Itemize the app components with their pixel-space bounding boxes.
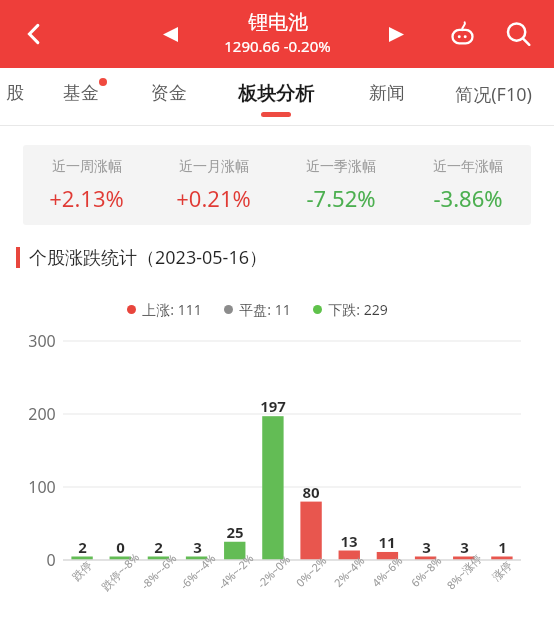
staticText: 近一月涨幅 [179,158,249,176]
button[interactable]: 简况(F10) [434,68,552,126]
staticText: 0 [116,537,125,557]
button[interactable]: 下跌: 229 [313,300,388,319]
staticText: 11 [378,532,396,552]
button[interactable]: 新闻 [344,68,430,126]
staticText: 近一周涨幅 [52,158,122,176]
staticText: 股 [6,82,24,105]
staticText: 8%~涨停 [443,551,485,592]
staticText: 2 [154,537,163,557]
staticText: 跌停~-8% [98,549,142,594]
staticText: 新闻 [369,82,405,105]
staticText: 100 [28,476,56,498]
staticText: 13 [340,531,358,551]
button[interactable]: Back [12,12,56,56]
staticText: 2%~4% [330,553,368,590]
staticText: 300 [28,330,56,352]
button[interactable]: 平盘: 11 [224,300,291,319]
staticText: 个股涨跌统计（2023-05-16） [29,245,267,270]
staticText: 资金 [151,82,187,105]
button[interactable]: 资金 [126,68,212,126]
staticText: 25 [226,522,244,542]
staticText: 197 [260,396,286,416]
button[interactable]: 基金 [36,68,126,126]
button[interactable]: 股 [0,68,30,126]
button[interactable]: Next sector [374,12,418,56]
staticText: -7.52% [306,183,376,213]
staticText: 4%~6% [368,553,406,590]
staticText: 0%~2% [292,553,330,590]
staticText: 基金 [63,82,99,105]
staticText: 3 [193,537,202,557]
staticText: 简况(F10) [455,82,532,107]
staticText: 6%~8% [407,553,445,590]
staticText: 0 [46,549,56,571]
staticText: +2.13% [49,183,124,213]
staticText: -2%~0% [254,552,293,591]
staticText: 1290.66 -0.20% [224,36,331,56]
button[interactable]: Search [496,12,540,56]
staticText: 3 [460,537,469,557]
staticText: 锂电池 [248,10,308,35]
button[interactable]: Previous sector [148,12,192,56]
staticText: -3.86% [433,183,503,213]
staticText: -4%~-2% [214,550,257,593]
staticText: 涨停 [489,558,515,584]
staticText: -6%~-4% [176,550,219,593]
staticText: +0.21% [176,183,251,213]
staticText: 80 [302,482,320,502]
staticText: -8%~-6% [137,550,180,593]
button[interactable]: 近一周涨幅 [23,145,531,225]
staticText: 上涨: 111 [142,300,202,319]
staticText: 1 [498,537,507,557]
staticText: 板块分析 [238,82,314,106]
staticText: 3 [422,537,431,557]
staticText: 近一季涨幅 [306,158,376,176]
staticText: 平盘: 11 [239,300,291,319]
staticText: 2 [78,537,87,557]
button[interactable]: AI assistant [440,12,484,56]
staticText: 近一年涨幅 [433,158,503,176]
button[interactable]: 板块分析 [214,68,338,126]
staticText: 跌停 [69,558,95,584]
staticText: 下跌: 229 [328,300,388,319]
staticText: 200 [28,403,56,425]
button[interactable]: 上涨: 111 [127,300,202,319]
